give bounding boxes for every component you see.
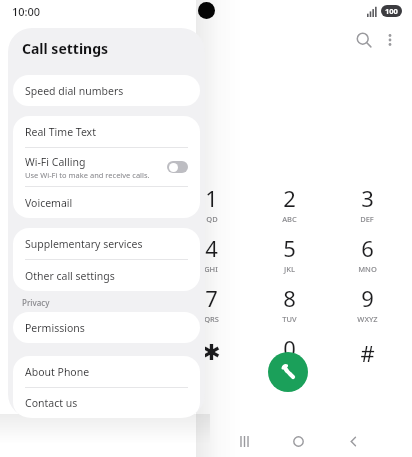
button[interactable]: 1: [177, 178, 245, 228]
button[interactable]: 0: [255, 328, 323, 378]
staticText: 8: [283, 283, 296, 313]
staticText: TUV: [282, 314, 297, 324]
staticText: 1: [205, 183, 218, 213]
button[interactable]: 9: [333, 278, 401, 328]
staticText: Call settings: [22, 39, 109, 58]
staticText: QRS: [204, 314, 219, 324]
staticText: 7: [205, 283, 218, 313]
staticText: Other call settings: [25, 269, 115, 283]
button[interactable]: 7: [177, 278, 245, 328]
button[interactable]: Search: [344, 20, 384, 60]
staticText: 5: [283, 233, 296, 263]
button[interactable]: Other call settings: [13, 260, 200, 291]
staticText: Privacy: [22, 297, 50, 308]
button[interactable]: Supplementary services: [13, 228, 200, 259]
button[interactable]: About Phone: [13, 356, 200, 387]
button[interactable]: 4: [177, 228, 245, 278]
staticText: ABC: [282, 214, 297, 224]
staticText: Speed dial numbers: [25, 84, 124, 98]
button[interactable]: Home: [285, 425, 311, 457]
button[interactable]: Contact us: [13, 388, 200, 418]
staticText: 3: [361, 183, 374, 213]
staticText: About Phone: [25, 365, 90, 379]
button[interactable]: 2: [255, 178, 323, 228]
staticText: 6: [361, 233, 374, 263]
staticText: Use Wi-Fi to make and receive calls.: [25, 170, 150, 180]
button[interactable]: Back: [340, 425, 366, 457]
button[interactable]: Permissions: [13, 312, 200, 343]
staticText: DEF: [360, 214, 374, 224]
button[interactable]: Speed dial numbers: [13, 75, 200, 106]
staticText: 100: [385, 6, 398, 16]
staticText: Voicemail: [25, 196, 73, 210]
staticText: 9: [361, 283, 374, 313]
staticText: WXYZ: [357, 314, 378, 324]
button[interactable]: 3: [333, 178, 401, 228]
button[interactable]: Call: [268, 352, 308, 392]
staticText: +: [287, 364, 292, 374]
staticText: 2: [283, 183, 296, 213]
staticText: JKL: [284, 264, 295, 274]
button[interactable]: Wi-Fi Calling: [13, 148, 200, 186]
button[interactable]: 5: [255, 228, 323, 278]
button[interactable]: Recents: [231, 425, 257, 457]
button[interactable]: Voicemail: [13, 187, 200, 218]
staticText: Permissions: [25, 321, 85, 335]
button[interactable]: More options: [370, 20, 410, 60]
staticText: Contact us: [25, 396, 78, 410]
button[interactable]: 6: [333, 228, 401, 278]
button[interactable]: 8: [255, 278, 323, 328]
staticText: #: [360, 338, 375, 368]
staticText: MNO: [358, 264, 377, 274]
staticText: Supplementary services: [25, 237, 143, 251]
staticText: 4: [205, 233, 218, 263]
staticText: 10:00: [12, 4, 41, 19]
staticText: 0: [283, 333, 296, 363]
staticText: Real Time Text: [25, 125, 96, 139]
staticText: ✱: [202, 340, 221, 366]
staticText: Wi-Fi Calling: [25, 155, 86, 169]
button[interactable]: #: [333, 328, 401, 378]
button[interactable]: Real Time Text: [13, 116, 200, 147]
button[interactable]: ✱: [177, 328, 245, 378]
staticText: GHI: [204, 264, 218, 274]
staticText: QD: [206, 214, 218, 224]
